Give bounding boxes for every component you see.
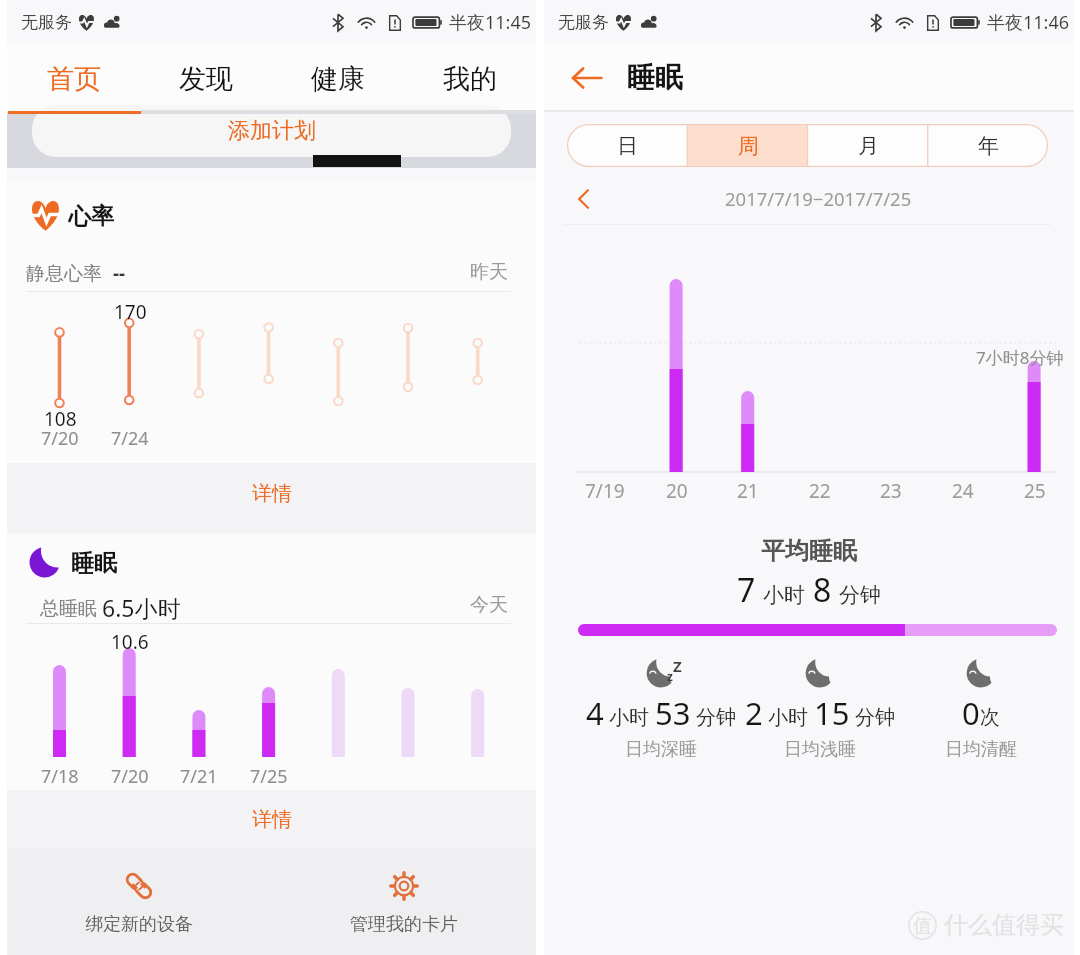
- staticText: z: [667, 668, 673, 684]
- staticText: 2: [745, 692, 763, 734]
- staticText: 15: [814, 692, 850, 734]
- staticText: 23: [880, 478, 902, 504]
- staticText: 日均深睡: [625, 738, 697, 761]
- staticText: 健康: [311, 62, 365, 96]
- staticText: 静息心率: [26, 260, 107, 286]
- staticText: 小时: [768, 705, 808, 730]
- staticText: 22: [809, 478, 831, 504]
- staticText: 管理我的卡片: [350, 913, 458, 936]
- staticText: 108: [44, 406, 77, 432]
- staticText: 7/24: [111, 426, 149, 451]
- staticText: 53: [655, 692, 691, 734]
- staticText: 7/25: [250, 764, 288, 789]
- staticText: 昨天: [470, 260, 508, 284]
- staticText: 日均清醒: [945, 738, 1017, 761]
- staticText: --: [113, 260, 126, 286]
- staticText: 20: [666, 478, 688, 504]
- staticText: 7小时8分钟: [976, 346, 1064, 369]
- staticText: 7/20: [111, 764, 149, 789]
- button[interactable]: 周: [688, 124, 808, 167]
- staticText: 月: [858, 133, 879, 159]
- staticText: 绑定新的设备: [85, 913, 193, 936]
- staticText: 4: [586, 692, 604, 734]
- staticText: 7: [737, 568, 756, 612]
- staticText: 今天: [470, 593, 508, 617]
- staticText: 首页: [47, 62, 101, 96]
- staticText: 年: [978, 133, 999, 159]
- staticText: 6.5小时: [102, 592, 181, 623]
- staticText: 心率: [68, 202, 114, 231]
- staticText: 半夜11:46: [987, 10, 1070, 35]
- staticText: 无服务: [558, 12, 609, 33]
- staticText: 值: [913, 914, 932, 938]
- staticText: Z: [673, 656, 682, 676]
- staticText: 睡眠: [71, 549, 117, 578]
- button[interactable]: 年: [928, 124, 1048, 167]
- staticText: 平均睡眠: [761, 536, 857, 566]
- staticText: 7/20: [41, 426, 79, 451]
- staticText: 2017/7/19−2017/7/25: [725, 186, 912, 211]
- button[interactable]: 管理我的卡片: [271, 848, 536, 955]
- staticText: 周: [738, 133, 759, 159]
- button[interactable]: 发现: [140, 44, 272, 113]
- staticText: 详情: [252, 481, 292, 506]
- staticText: 24: [952, 478, 974, 504]
- button[interactable]: 日: [567, 124, 688, 167]
- button[interactable]: 月: [808, 124, 928, 167]
- staticText: 21: [737, 478, 759, 504]
- staticText: 7/21: [180, 764, 218, 789]
- staticText: 什么值得买: [944, 910, 1064, 940]
- staticText: 分钟: [855, 705, 895, 730]
- staticText: 10.6: [111, 629, 149, 655]
- staticText: 睡眠: [627, 60, 683, 95]
- button[interactable]: 健康: [272, 44, 404, 113]
- button[interactable]: 首页: [7, 44, 140, 113]
- staticText: 0: [962, 692, 980, 734]
- staticText: 8: [813, 568, 832, 612]
- button[interactable]: 详情: [7, 790, 536, 848]
- staticText: 7/18: [41, 764, 79, 789]
- staticText: 小时: [609, 705, 649, 730]
- staticText: 我的: [443, 62, 497, 96]
- staticText: 半夜11:45: [449, 10, 532, 35]
- staticText: 次: [980, 705, 1000, 730]
- button[interactable]: Previous week: [566, 181, 602, 217]
- staticText: 小时: [763, 582, 805, 608]
- staticText: 7/19: [585, 478, 625, 504]
- staticText: 170: [114, 299, 147, 325]
- staticText: 日: [617, 133, 638, 159]
- staticText: 25: [1024, 478, 1046, 504]
- staticText: 总睡眠: [40, 595, 102, 621]
- staticText: 分钟: [839, 582, 881, 608]
- staticText: 添加计划: [228, 117, 316, 145]
- staticText: 详情: [252, 807, 292, 832]
- button[interactable]: 添加计划: [32, 105, 511, 157]
- button[interactable]: 绑定新的设备: [7, 848, 271, 955]
- button[interactable]: 我的: [404, 44, 536, 113]
- staticText: 无服务: [21, 12, 72, 33]
- staticText: 发现: [179, 62, 233, 96]
- button[interactable]: Back: [566, 57, 608, 99]
- staticText: 分钟: [696, 705, 736, 730]
- button[interactable]: 详情: [7, 463, 536, 523]
- staticText: 日均浅睡: [784, 738, 856, 761]
